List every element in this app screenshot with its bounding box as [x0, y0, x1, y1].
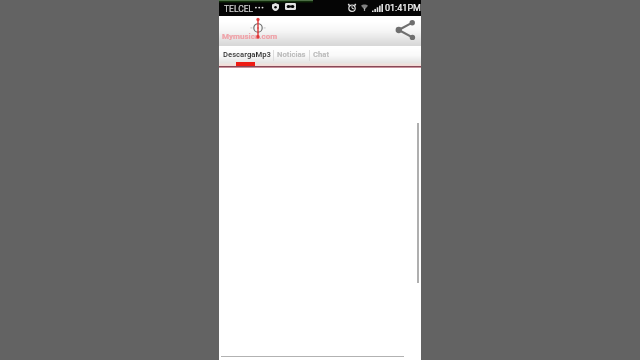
staticText: Chat [313, 50, 330, 59]
button[interactable]: DescargaMp3 [220, 46, 268, 64]
staticText: TELCEL [224, 4, 254, 14]
button[interactable]: Noticias [274, 46, 303, 64]
staticText: Noticias [277, 50, 306, 59]
staticText: 01:41PM [385, 3, 421, 14]
staticText: Mymusica.com [222, 32, 278, 41]
button[interactable]: Share [391, 15, 420, 45]
button[interactable]: Chat [310, 46, 327, 64]
staticText: DescargaMp3 [223, 50, 271, 59]
